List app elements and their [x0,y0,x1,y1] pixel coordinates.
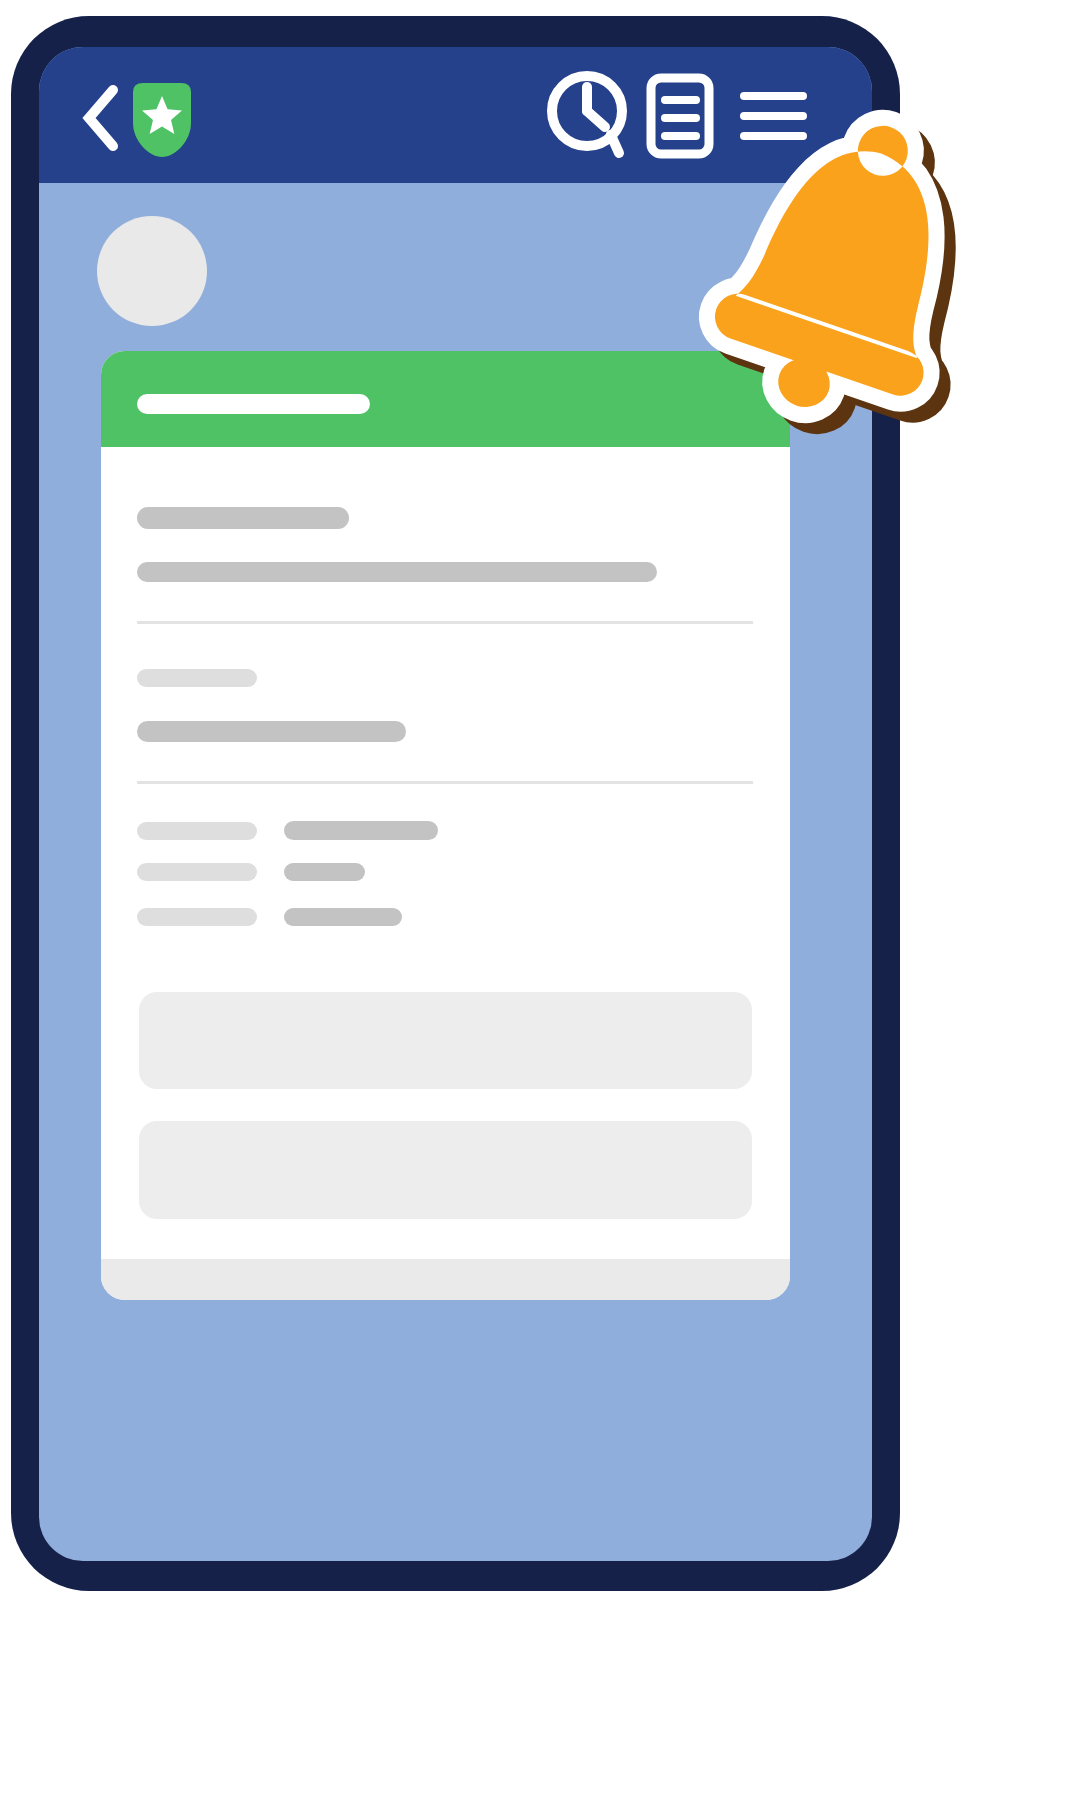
button[interactable]: Notifications [752,132,950,390]
button[interactable]: Back [70,78,136,156]
button[interactable]: Recent searches [544,64,638,166]
button[interactable]: Documents [640,64,724,166]
button[interactable] [101,351,790,1300]
button[interactable]: Menu [730,64,820,166]
button[interactable]: Home [126,74,198,164]
